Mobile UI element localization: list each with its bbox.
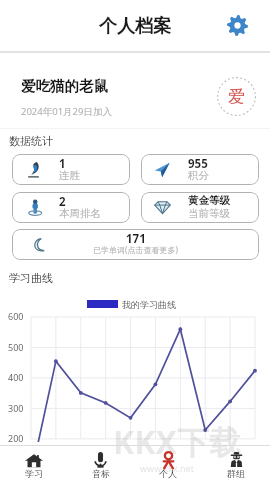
staticText: 已学单词(点击查看更多) bbox=[93, 244, 178, 255]
staticText: 2024年01月29日加入 bbox=[21, 105, 112, 118]
button[interactable]: 群组 bbox=[202, 446, 270, 480]
staticText: www.kkx.net bbox=[140, 462, 194, 474]
staticText: 我的学习曲线 bbox=[122, 299, 176, 310]
staticText: 171 bbox=[126, 231, 146, 247]
button[interactable]: 2 bbox=[12, 192, 130, 223]
staticText: 当前等级 bbox=[188, 207, 230, 220]
staticText: 个人档案 bbox=[99, 15, 171, 38]
staticText: 2 bbox=[59, 194, 66, 210]
staticText: 400 bbox=[8, 371, 24, 383]
staticText: 爱吃猫的老鼠 bbox=[21, 77, 108, 95]
button[interactable]: 爱吃猫的老鼠 bbox=[0, 53, 270, 127]
button[interactable]: 个人 bbox=[134, 446, 202, 480]
staticText: 1 bbox=[59, 156, 66, 172]
button[interactable]: 音标 bbox=[67, 446, 134, 480]
staticText: 300 bbox=[8, 402, 24, 414]
staticText: 955 bbox=[188, 156, 208, 172]
button[interactable]: 1 bbox=[12, 154, 130, 185]
staticText: 学习 bbox=[25, 468, 43, 479]
staticText: 积分 bbox=[188, 169, 209, 182]
staticText: 600 bbox=[8, 310, 24, 322]
button[interactable]: 学习 bbox=[0, 446, 67, 480]
staticText: 数据统计 bbox=[9, 134, 53, 148]
staticText: 黄金等级 bbox=[188, 194, 230, 207]
button[interactable]: Settings bbox=[226, 14, 249, 37]
staticText: 本周排名 bbox=[59, 207, 101, 220]
staticText: KKX下载 bbox=[113, 420, 241, 464]
staticText: 连胜 bbox=[59, 169, 80, 182]
staticText: 群组 bbox=[227, 468, 245, 479]
button[interactable]: 955 bbox=[141, 154, 259, 185]
staticText: 500 bbox=[8, 341, 24, 353]
button[interactable]: 黄金等级 bbox=[141, 192, 259, 223]
button[interactable]: 171 bbox=[12, 229, 259, 260]
staticText: 200 bbox=[8, 432, 24, 442]
staticText: 爱 bbox=[228, 86, 245, 107]
staticText: 音标 bbox=[92, 468, 110, 479]
staticText: 个人 bbox=[159, 468, 177, 479]
staticText: 学习曲线 bbox=[9, 271, 53, 285]
